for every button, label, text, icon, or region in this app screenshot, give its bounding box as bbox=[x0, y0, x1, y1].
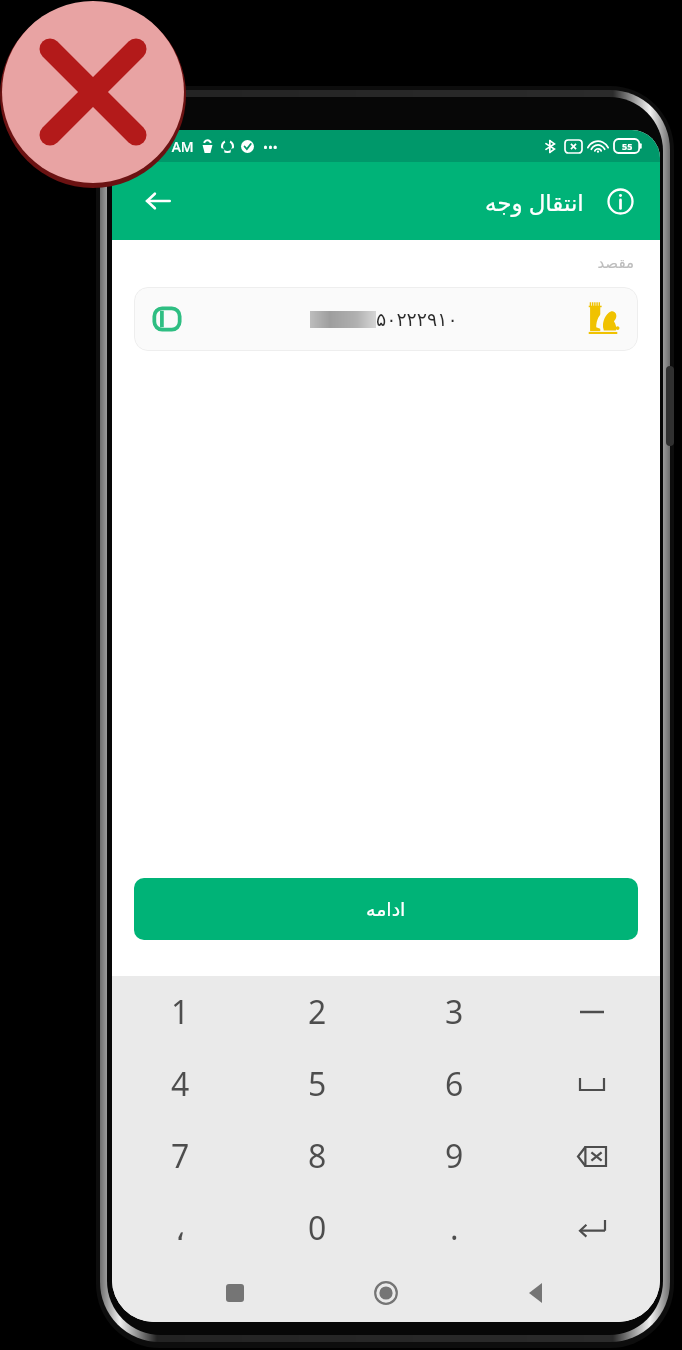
staticText: انتقال وجه bbox=[485, 186, 584, 217]
button[interactable]: 9 bbox=[386, 1120, 523, 1192]
button[interactable]: 6 bbox=[386, 1048, 523, 1120]
staticText: 55 bbox=[622, 140, 633, 152]
button[interactable]: Back bbox=[136, 179, 180, 223]
staticText: 0 bbox=[308, 1206, 327, 1250]
button[interactable]: . bbox=[386, 1192, 523, 1264]
staticText: 9 bbox=[445, 1134, 464, 1178]
button[interactable]: 5 bbox=[249, 1048, 386, 1120]
staticText: 8 bbox=[308, 1134, 327, 1178]
button[interactable] bbox=[523, 1048, 660, 1120]
staticText: 5 bbox=[308, 1062, 327, 1106]
button[interactable]: Back bbox=[509, 1265, 565, 1321]
button[interactable]: Info bbox=[598, 179, 642, 223]
staticText: . bbox=[450, 1206, 459, 1250]
button[interactable] bbox=[523, 976, 660, 1048]
staticText: 2 bbox=[308, 990, 327, 1034]
staticText: ، bbox=[175, 1210, 186, 1247]
button[interactable]: 2 bbox=[249, 976, 386, 1048]
button[interactable]: Home bbox=[358, 1265, 414, 1321]
button[interactable]: 7 bbox=[112, 1120, 249, 1192]
button[interactable] bbox=[523, 1192, 660, 1264]
staticText: مقصد bbox=[112, 254, 634, 271]
staticText: 1 bbox=[171, 990, 190, 1034]
staticText: 6 bbox=[445, 1062, 464, 1106]
staticText: 7 bbox=[171, 1134, 190, 1178]
staticText: 5 AM bbox=[160, 137, 194, 156]
staticText: ••• bbox=[263, 138, 278, 156]
staticText: 4 bbox=[171, 1062, 190, 1106]
button[interactable]: ادامه bbox=[134, 878, 638, 940]
button[interactable]: ۵۰۲۲۲۹۱۰ bbox=[134, 287, 638, 351]
button[interactable]: 1 bbox=[112, 976, 249, 1048]
button[interactable]: 3 bbox=[386, 976, 523, 1048]
staticText: ادامه bbox=[366, 898, 406, 920]
button[interactable]: ، bbox=[112, 1192, 249, 1264]
button[interactable]: 4 bbox=[112, 1048, 249, 1120]
button[interactable]: 8 bbox=[249, 1120, 386, 1192]
button[interactable]: Recents bbox=[207, 1265, 263, 1321]
staticText: ۵۰۲۲۲۹۱۰ bbox=[376, 308, 458, 330]
button[interactable]: 0 bbox=[249, 1192, 386, 1264]
staticText: 3 bbox=[445, 990, 464, 1034]
button[interactable] bbox=[523, 1120, 660, 1192]
